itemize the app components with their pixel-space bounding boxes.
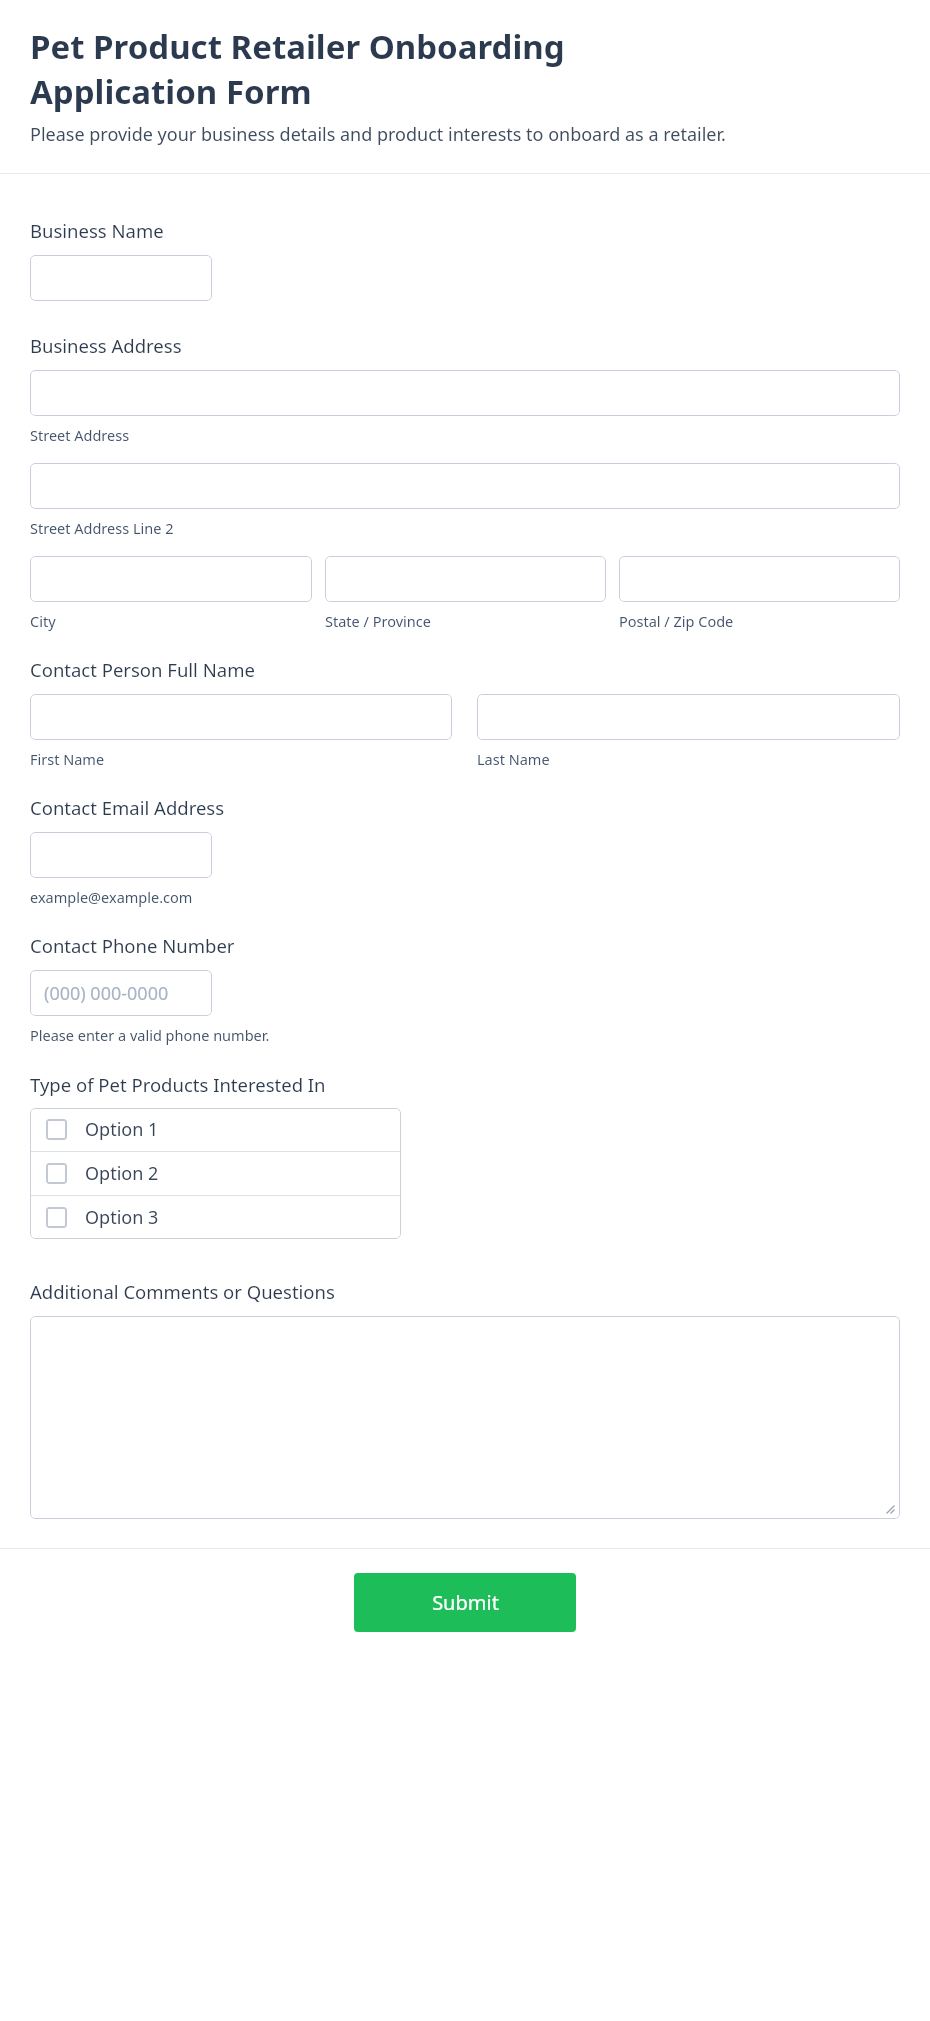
button[interactable] [325,556,606,602]
button[interactable] [619,556,900,602]
button[interactable]: Option 1 [30,1108,401,1151]
staticText: Pet Product Retailer Onboarding Applicat… [30,24,565,114]
staticText: Option 2 [85,1161,159,1186]
staticText: Contact Person Full Name [30,657,255,682]
staticText: First Name [30,749,105,769]
staticText: Option 3 [85,1205,159,1230]
staticText: Please provide your business details and… [30,122,726,147]
button[interactable]: Option 2 [30,1152,401,1195]
staticText: Postal / Zip Code [619,611,734,631]
button[interactable]: Submit [354,1573,576,1632]
staticText: Additional Comments or Questions [30,1279,335,1304]
button[interactable]: Option 3 [30,1196,401,1239]
staticText: example@example.com [30,887,193,907]
staticText: Street Address [30,425,130,445]
staticText: Type of Pet Products Interested In [30,1072,326,1097]
button[interactable]: (000) 000-0000 [30,970,212,1016]
button[interactable] [477,694,900,740]
staticText: Contact Phone Number [30,933,235,958]
staticText: Submit [432,1589,499,1616]
staticText: Contact Email Address [30,795,225,820]
staticText: City [30,611,56,631]
staticText: State / Province [325,611,431,631]
staticText: Business Name [30,218,164,243]
button[interactable] [30,370,900,416]
button[interactable] [30,556,312,602]
button[interactable] [30,255,212,301]
button[interactable] [30,463,900,509]
button[interactable] [30,832,212,878]
staticText: Last Name [477,749,550,769]
staticText: Option 1 [85,1117,159,1142]
button[interactable] [30,694,452,740]
staticText: Street Address Line 2 [30,518,174,538]
staticText: Business Address [30,333,182,358]
button[interactable] [30,1316,900,1519]
staticText: Please enter a valid phone number. [30,1025,270,1045]
staticText: (000) 000-0000 [44,981,169,1006]
